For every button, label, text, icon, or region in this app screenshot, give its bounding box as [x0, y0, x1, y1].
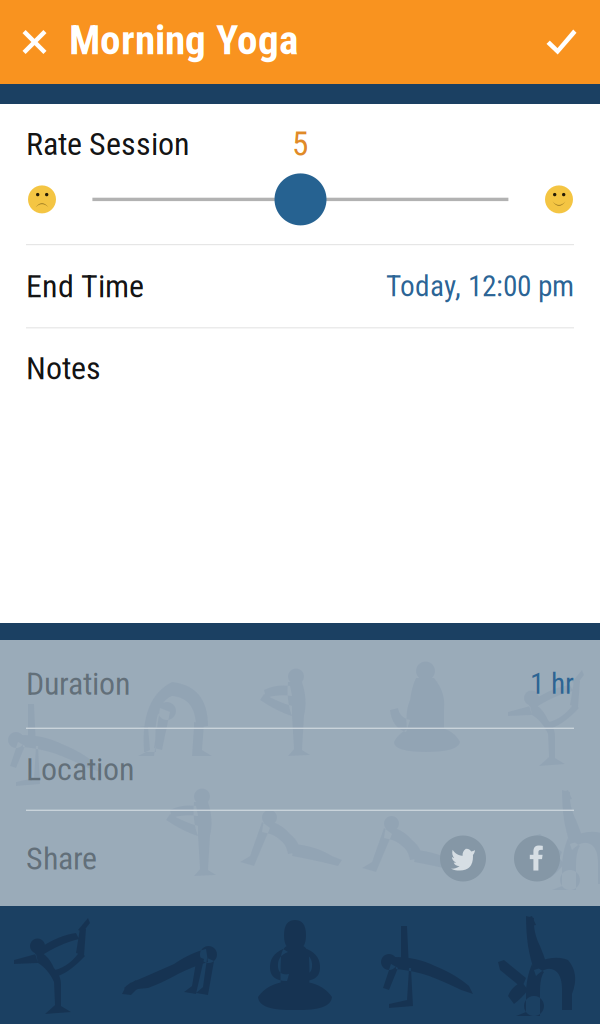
staticText: 1 hr [530, 667, 574, 701]
staticText: Duration [26, 665, 131, 702]
staticText: Today, 12:00 pm [386, 269, 574, 303]
staticText: 5 [292, 124, 308, 164]
button[interactable]: Share on Twitter [440, 835, 486, 881]
button[interactable]: Location [0, 729, 600, 810]
staticText: End Time [26, 267, 144, 305]
staticText: Share [26, 840, 97, 877]
button[interactable]: Share on Facebook [514, 835, 560, 881]
staticText: Morning Yoga [69, 16, 298, 64]
button[interactable]: End Time [0, 245, 600, 327]
staticText: Location [26, 750, 135, 788]
button[interactable]: Duration [0, 640, 600, 728]
button[interactable]: Done [523, 0, 600, 84]
button[interactable]: Notes [0, 328, 600, 408]
staticText: Rate Session [26, 125, 190, 163]
button[interactable]: Close [0, 0, 69, 84]
staticText: Notes [26, 350, 101, 387]
